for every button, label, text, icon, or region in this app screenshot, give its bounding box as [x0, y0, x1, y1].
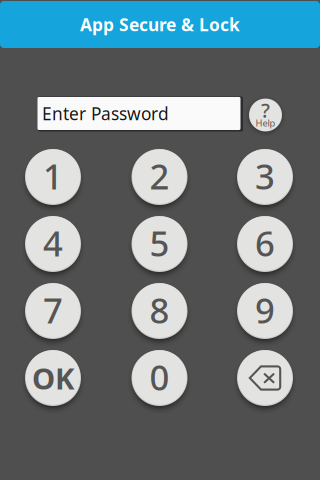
button[interactable]: 8: [124, 276, 194, 346]
button[interactable]: Delete: [230, 343, 300, 413]
button[interactable]: 0: [124, 343, 194, 413]
button[interactable]: Help: [244, 94, 286, 136]
button[interactable]: 7: [18, 276, 88, 346]
staticText: 2: [149, 153, 169, 199]
staticText: 1: [43, 153, 63, 199]
staticText: 7: [43, 287, 63, 333]
staticText: 0: [149, 354, 169, 400]
staticText: Enter Password: [42, 102, 169, 125]
staticText: 6: [255, 220, 275, 266]
staticText: 3: [255, 153, 275, 199]
button[interactable]: OK: [18, 343, 88, 413]
staticText: 4: [43, 220, 63, 266]
staticText: 9: [255, 287, 275, 333]
button[interactable]: 6: [230, 209, 300, 279]
staticText: App Secure & Lock: [80, 13, 240, 36]
button[interactable]: 5: [124, 209, 194, 279]
button[interactable]: 9: [230, 276, 300, 346]
staticText: OK: [32, 358, 74, 397]
staticText: 8: [149, 287, 169, 333]
button[interactable]: 2: [124, 142, 194, 212]
button[interactable]: 3: [230, 142, 300, 212]
staticText: Help: [255, 117, 275, 129]
button[interactable]: 1: [18, 142, 88, 212]
staticText: ?: [261, 97, 270, 123]
staticText: 5: [149, 220, 169, 266]
button[interactable]: 4: [18, 209, 88, 279]
